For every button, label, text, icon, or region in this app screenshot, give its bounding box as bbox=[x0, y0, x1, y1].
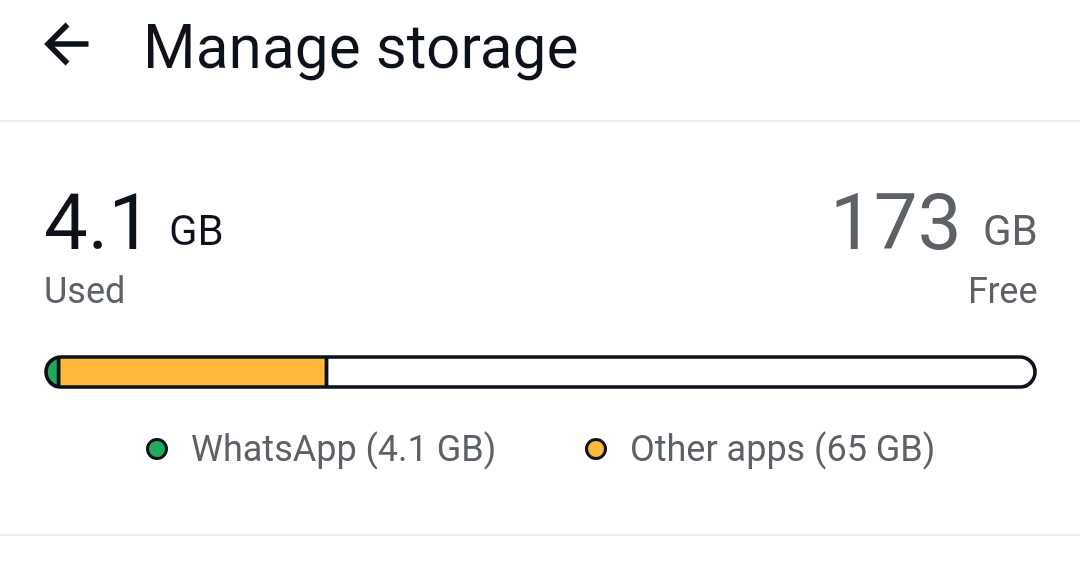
button[interactable]: Navigate up bbox=[31, 8, 103, 80]
staticText: Free bbox=[968, 270, 1038, 312]
staticText: Used bbox=[44, 270, 126, 312]
staticText: 173 bbox=[830, 177, 962, 268]
staticText: GB bbox=[169, 206, 224, 255]
staticText: Other apps (65 GB) bbox=[630, 428, 936, 470]
button[interactable]: Other apps (65 GB) bbox=[585, 427, 936, 471]
staticText: GB bbox=[983, 206, 1038, 255]
staticText: Manage storage bbox=[143, 12, 579, 83]
staticText: WhatsApp (4.1 GB) bbox=[191, 428, 497, 470]
staticText: 4.1 bbox=[44, 177, 153, 268]
button[interactable]: WhatsApp (4.1 GB) bbox=[146, 427, 497, 471]
